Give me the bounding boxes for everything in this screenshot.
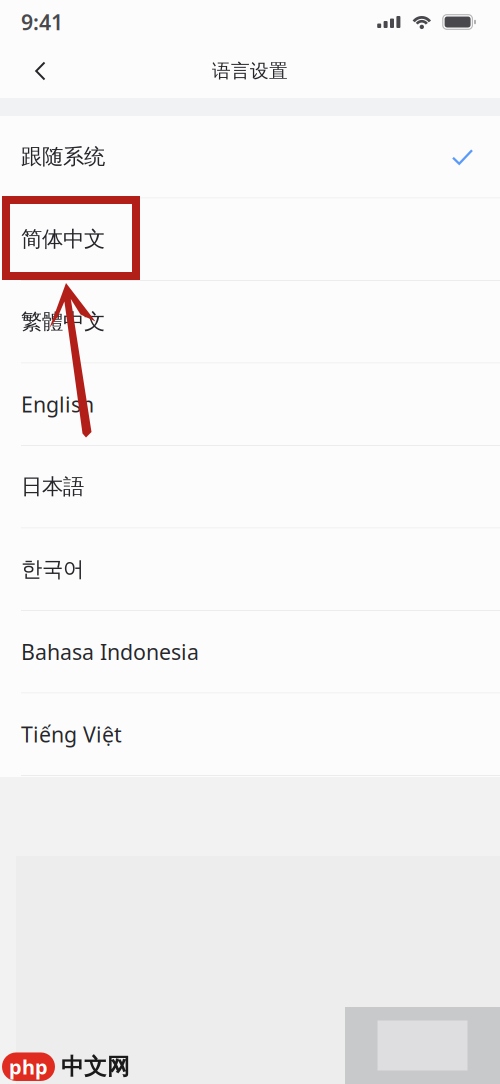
button[interactable]: Bahasa Indonesia [0, 611, 500, 693]
staticText: English [21, 390, 94, 418]
staticText: 9:41 [21, 8, 63, 36]
staticText: 简体中文 [21, 226, 105, 252]
button[interactable]: 繁體中文 [0, 281, 500, 363]
button[interactable]: 한국어 [0, 528, 500, 611]
button[interactable]: 日本語 [0, 446, 500, 528]
button[interactable]: Back [0, 44, 81, 98]
button[interactable]: 简体中文 [0, 198, 500, 281]
staticText: php [9, 1053, 48, 1080]
button[interactable]: 跟随系统 [0, 116, 500, 198]
staticText: 日本語 [21, 474, 84, 500]
staticText: 繁體中文 [21, 309, 105, 335]
button[interactable]: English [0, 363, 500, 446]
staticText: Tiếng Việt [21, 720, 122, 748]
staticText: 跟随系统 [21, 144, 105, 170]
staticText: 语言设置 [212, 59, 288, 82]
staticText: 中文网 [61, 1053, 130, 1081]
staticText: Bahasa Indonesia [21, 638, 199, 666]
button[interactable]: Tiếng Việt [0, 693, 500, 776]
staticText: 한국어 [21, 556, 84, 582]
